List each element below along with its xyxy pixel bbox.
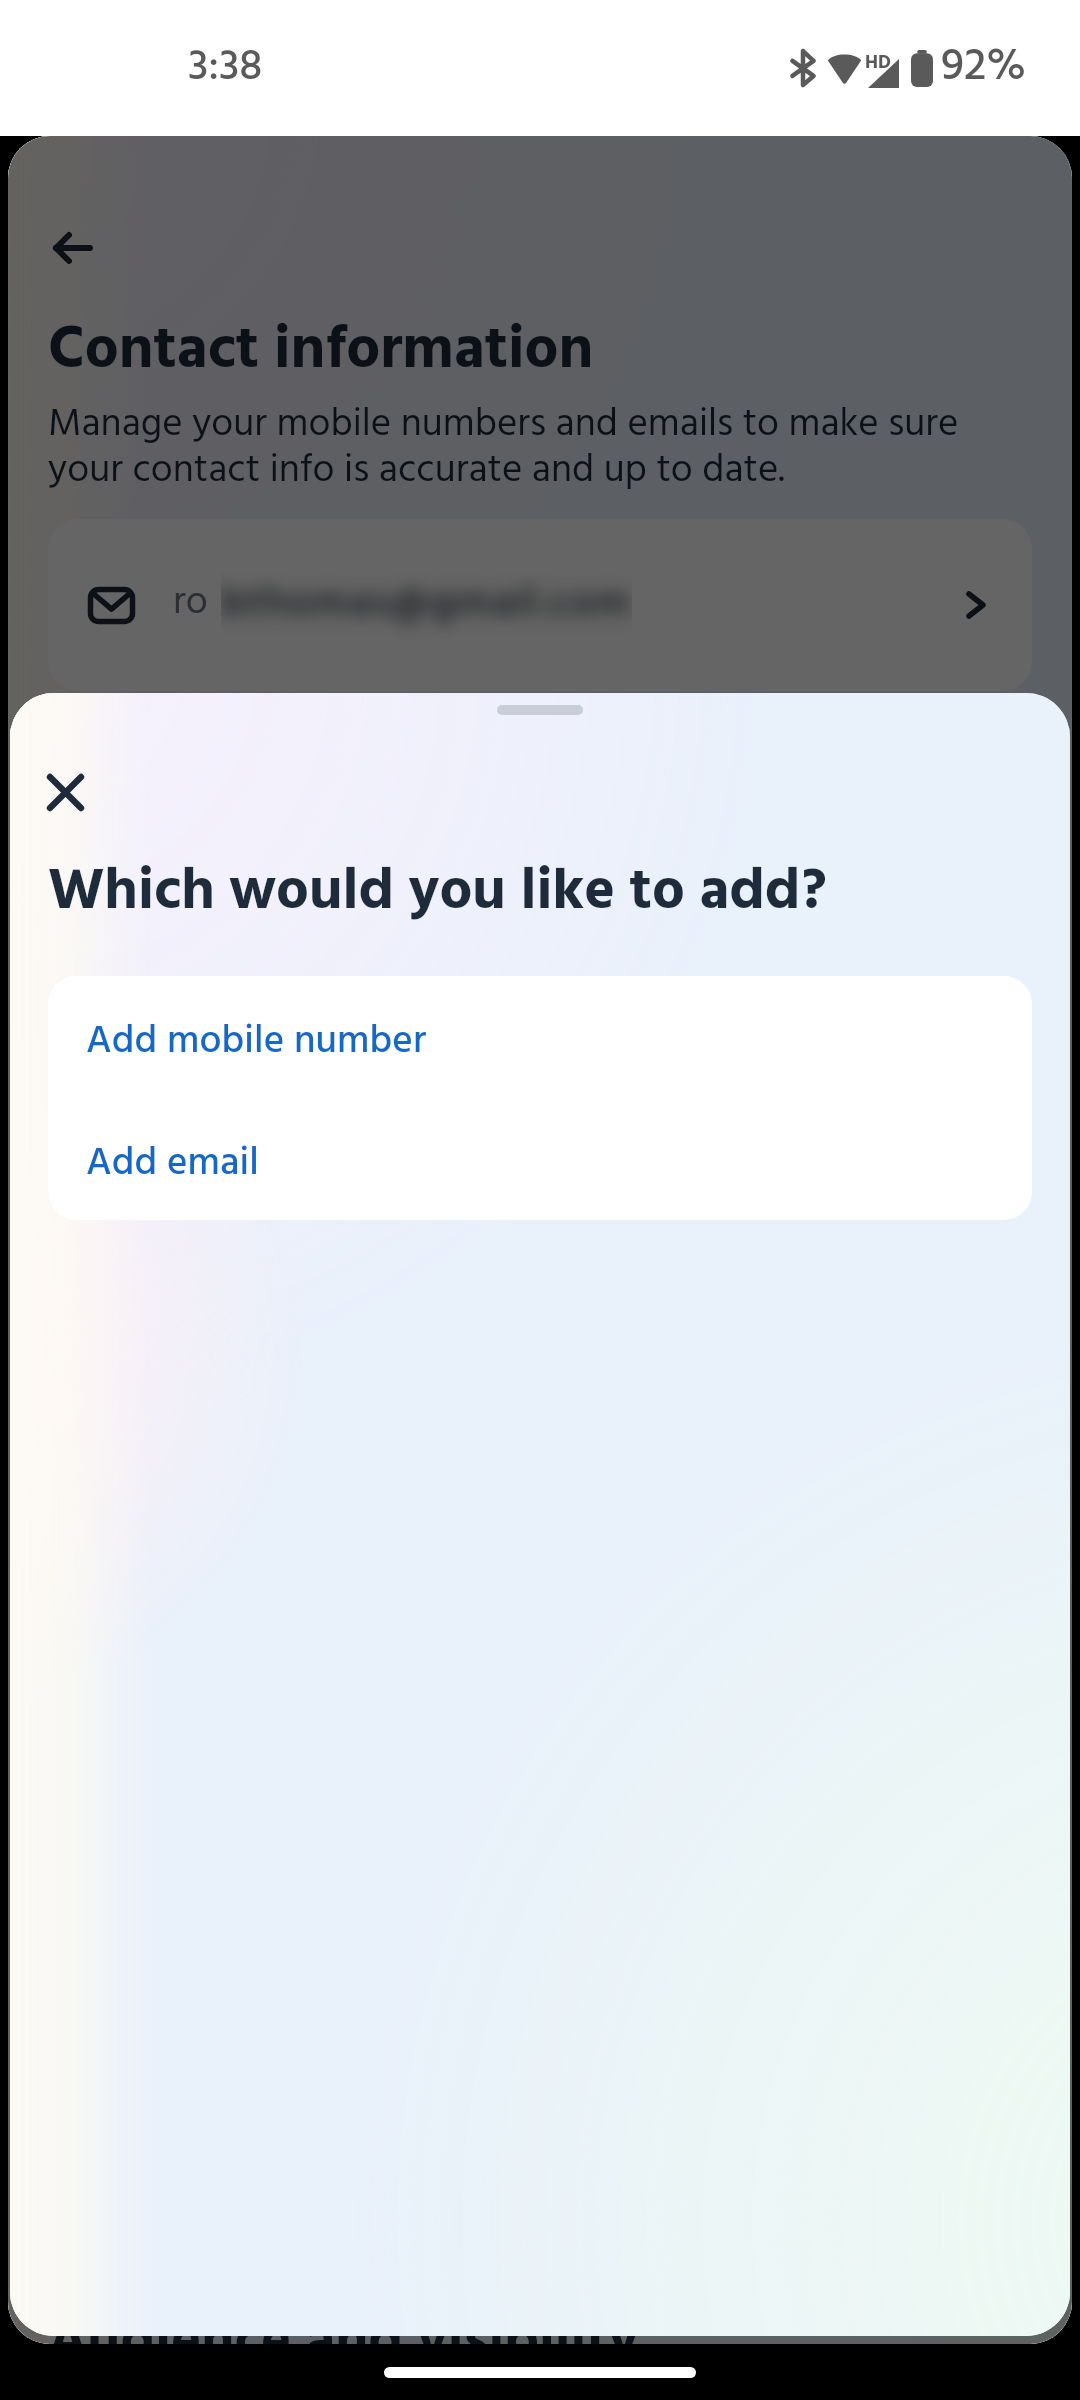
staticText: Which would you like to add? — [48, 847, 827, 940]
staticText: 92% — [941, 32, 1027, 104]
staticText: Manage your mobile numbers and emails to… — [48, 394, 959, 503]
button[interactable]: ro — [48, 519, 1032, 691]
staticText: ro — [173, 572, 208, 634]
button[interactable]: Add mobile number — [48, 976, 1032, 1098]
staticText: Add email — [86, 1133, 259, 1195]
button[interactable]: Close — [29, 756, 101, 828]
staticText: 3:38 — [188, 34, 263, 103]
staticText: Audience and visibility — [48, 2297, 639, 2344]
staticText: HD — [865, 48, 892, 78]
staticText: Contact information — [48, 304, 594, 400]
button[interactable]: Add email — [48, 1098, 1032, 1220]
staticText: Add mobile number — [86, 1011, 427, 1073]
staticText: bthomas@gmail.com — [221, 572, 632, 638]
button[interactable]: Back — [47, 222, 99, 274]
